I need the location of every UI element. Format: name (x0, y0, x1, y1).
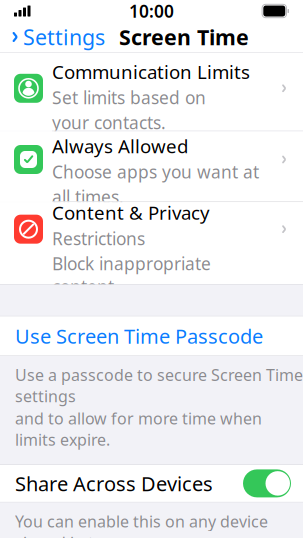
staticText: and to allow for more time when limits e… (15, 408, 262, 450)
button[interactable]: Communication Limits (0, 53, 303, 131)
button[interactable]: Share Across Devices (243, 465, 303, 501)
button[interactable]: Content & Privacy (0, 202, 303, 284)
staticText: Set limits based on (52, 86, 206, 109)
staticText: Restrictions (52, 227, 145, 250)
staticText: Use a passcode to secure Screen Time set… (15, 364, 303, 407)
button[interactable]: Use Screen Time Passcode (0, 316, 303, 355)
staticText: your contacts. (52, 111, 166, 134)
staticText: Communication Limits (52, 59, 250, 84)
staticText: Block inappropriate content. (52, 252, 211, 298)
staticText: all times. (52, 185, 124, 208)
button[interactable]: Always Allowed (0, 131, 303, 201)
staticText: Use Screen Time Passcode (15, 323, 263, 349)
staticText: Screen Time (119, 23, 249, 51)
staticText: Always Allowed (52, 133, 188, 158)
staticText: Settings (23, 23, 105, 51)
staticText: 10:00 (129, 0, 174, 22)
button[interactable]: Settings (0, 18, 111, 56)
staticText: You can enable this on any device signed… (15, 511, 268, 538)
staticText: Content & Privacy (52, 200, 210, 225)
staticText: Share Across Devices (15, 470, 213, 497)
staticText: Choose apps you want at (52, 160, 259, 183)
